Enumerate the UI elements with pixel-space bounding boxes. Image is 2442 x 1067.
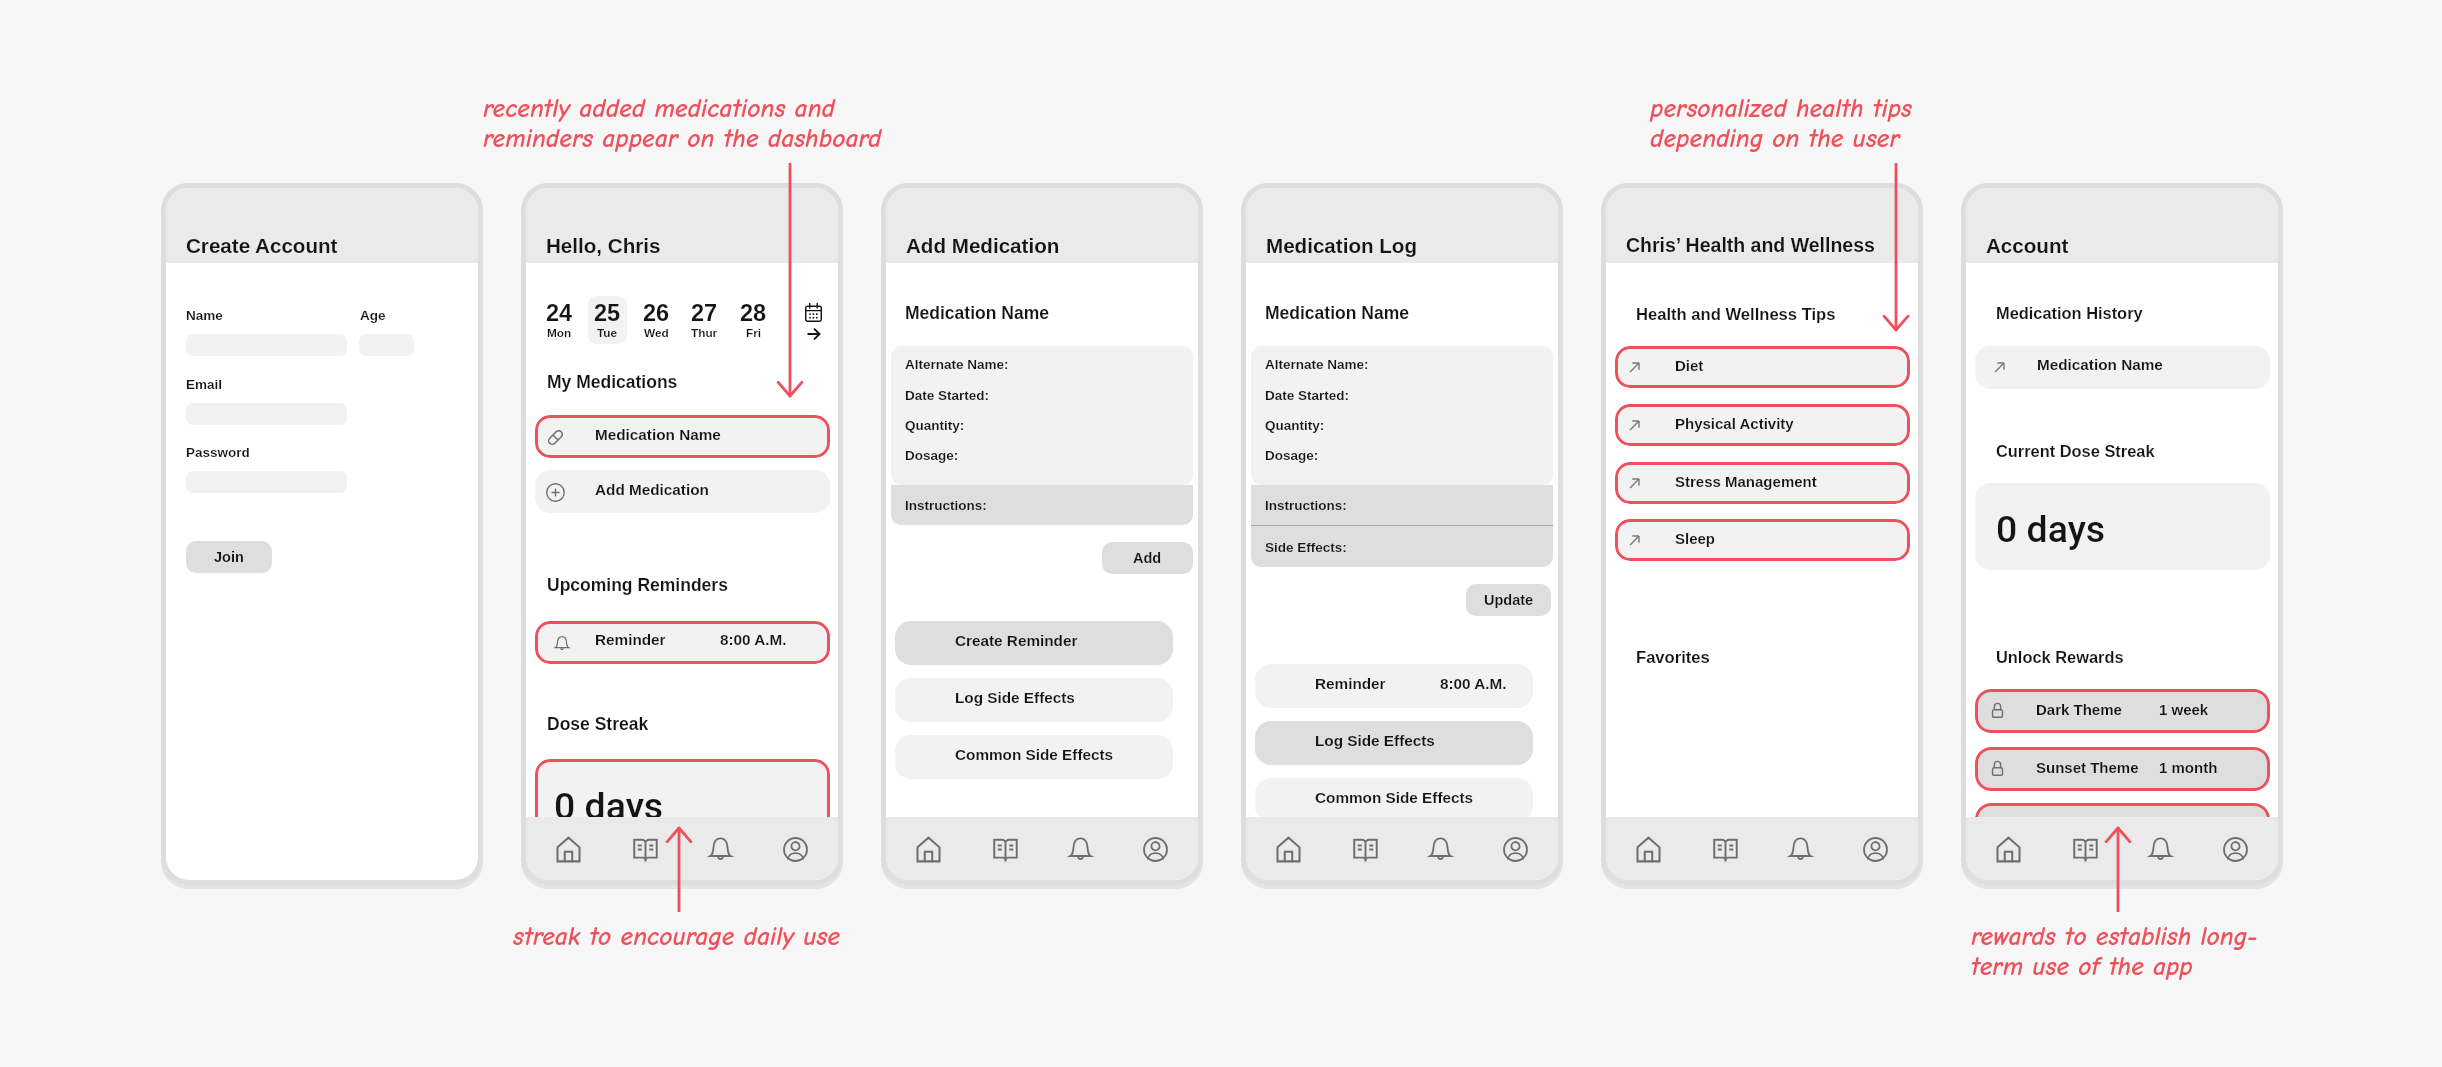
staticText: Account xyxy=(1986,234,2069,257)
button[interactable]: 24 xyxy=(540,296,579,344)
staticText: Update xyxy=(1484,592,1534,608)
button[interactable]: Reminder xyxy=(1255,664,1533,708)
staticText: Log Side Effects xyxy=(955,689,1075,706)
staticText: 0 days xyxy=(554,784,664,828)
button[interactable]: 27 xyxy=(685,296,724,344)
staticText: Add Medication xyxy=(595,481,709,498)
staticText: 25 xyxy=(594,300,621,326)
button[interactable]: 0 days xyxy=(535,759,830,843)
button[interactable]: Home xyxy=(1262,823,1314,875)
button[interactable] xyxy=(1975,803,2270,847)
staticText: Wed xyxy=(644,326,669,339)
button[interactable]: Stress Management xyxy=(1615,462,1910,504)
button[interactable]: Notifications xyxy=(694,823,746,875)
staticText: Log Side Effects xyxy=(1315,732,1435,749)
staticText: 0 days xyxy=(1996,507,2106,551)
staticText: 1 week xyxy=(2159,701,2209,718)
button[interactable]: Medication Name xyxy=(535,415,830,458)
staticText: rewards to establish long- term use of t… xyxy=(1971,922,2258,982)
staticText: Favorites xyxy=(1636,648,1710,667)
staticText: 8:00 A.M. xyxy=(1440,675,1507,692)
button[interactable]: Log Side Effects xyxy=(1255,721,1533,765)
staticText: Date Started: xyxy=(1265,388,1350,403)
staticText: Add xyxy=(1133,550,1162,566)
staticText: Tue xyxy=(597,326,618,339)
staticText: Thur xyxy=(691,326,718,339)
button[interactable]: Notifications xyxy=(2134,823,2186,875)
staticText: Common Side Effects xyxy=(955,746,1114,763)
button[interactable]: Sunset Theme xyxy=(1975,747,2270,791)
staticText: 27 xyxy=(691,300,718,326)
button[interactable]: Account xyxy=(1129,823,1181,875)
staticText: Sunset Theme xyxy=(2036,759,2139,776)
button[interactable]: Join xyxy=(186,541,272,573)
staticText: Medication Log xyxy=(1266,234,1418,257)
button[interactable]: Library xyxy=(979,823,1031,875)
staticText: Instructions: xyxy=(905,498,987,513)
staticText: Chris’ Health and Wellness xyxy=(1626,234,1875,256)
staticText: streak to encourage daily use xyxy=(513,922,841,952)
button[interactable]: Common Side Effects xyxy=(1255,778,1533,822)
button[interactable]: 26 xyxy=(637,296,676,344)
staticText: 28 xyxy=(740,300,767,326)
button[interactable]: Notifications xyxy=(1414,823,1466,875)
button[interactable]: Update xyxy=(1466,584,1551,616)
button[interactable]: Home xyxy=(542,823,594,875)
staticText: Medication History xyxy=(1996,304,2143,322)
button[interactable]: Physical Activity xyxy=(1615,404,1910,446)
staticText: Reminder xyxy=(1315,675,1386,692)
staticText: Physical Activity xyxy=(1675,415,1794,432)
button[interactable]: Dark Theme xyxy=(1975,689,2270,733)
staticText: Quantity: xyxy=(1265,418,1325,433)
button[interactable]: Open calendar xyxy=(799,296,838,344)
button[interactable]: Account xyxy=(769,823,821,875)
staticText: recently added medications and reminders… xyxy=(483,94,882,154)
button[interactable]: Library xyxy=(1699,823,1751,875)
staticText: 8:00 A.M. xyxy=(720,631,787,648)
button[interactable]: 28 xyxy=(734,296,773,344)
button[interactable]: Home xyxy=(1982,823,2034,875)
staticText: Create Account xyxy=(186,234,338,257)
staticText: Date Started: xyxy=(905,388,990,403)
button[interactable]: Library xyxy=(619,823,671,875)
staticText: Alternate Name: xyxy=(1265,357,1369,372)
staticText: Instructions: xyxy=(1265,498,1347,513)
staticText: Dosage: xyxy=(1265,448,1319,463)
staticText: Diet xyxy=(1675,357,1704,374)
button[interactable]: Home xyxy=(1622,823,1674,875)
button[interactable]: Add Medication xyxy=(535,470,830,513)
button[interactable]: Library xyxy=(2059,823,2111,875)
button[interactable]: Log Side Effects xyxy=(895,678,1173,722)
staticText: Hello, Chris xyxy=(546,234,661,257)
staticText: 26 xyxy=(643,300,670,326)
button[interactable]: Add xyxy=(1102,542,1193,574)
staticText: Dosage: xyxy=(905,448,959,463)
staticText: Add Medication xyxy=(906,234,1060,257)
button[interactable]: Account xyxy=(1849,823,1901,875)
button[interactable]: Sleep xyxy=(1615,519,1910,561)
staticText: Name xyxy=(186,308,223,323)
button[interactable]: Account xyxy=(1489,823,1541,875)
button[interactable]: 25 xyxy=(588,296,627,344)
staticText: My Medications xyxy=(547,372,678,392)
staticText: Medication Name xyxy=(905,303,1049,323)
staticText: Medication Name xyxy=(595,426,721,443)
button[interactable]: Home xyxy=(902,823,954,875)
button[interactable]: Common Side Effects xyxy=(895,735,1173,779)
button[interactable]: Diet xyxy=(1615,346,1910,388)
staticText: Age xyxy=(360,308,386,323)
button[interactable]: Notifications xyxy=(1054,823,1106,875)
staticText: Upcoming Reminders xyxy=(547,575,728,595)
staticText: 1 month xyxy=(2159,759,2218,776)
button[interactable]: Account xyxy=(2209,823,2261,875)
button[interactable]: Create Reminder xyxy=(895,621,1173,665)
staticText: Alternate Name: xyxy=(905,357,1009,372)
button[interactable]: Medication Name xyxy=(1975,346,2270,389)
button[interactable]: Notifications xyxy=(1774,823,1826,875)
button[interactable]: Reminder xyxy=(535,621,830,664)
staticText: Side Effects: xyxy=(1265,540,1347,555)
staticText: Password xyxy=(186,445,250,460)
button[interactable]: Library xyxy=(1339,823,1391,875)
staticText: Stress Management xyxy=(1675,473,1817,490)
staticText: Dose Streak xyxy=(547,714,649,734)
